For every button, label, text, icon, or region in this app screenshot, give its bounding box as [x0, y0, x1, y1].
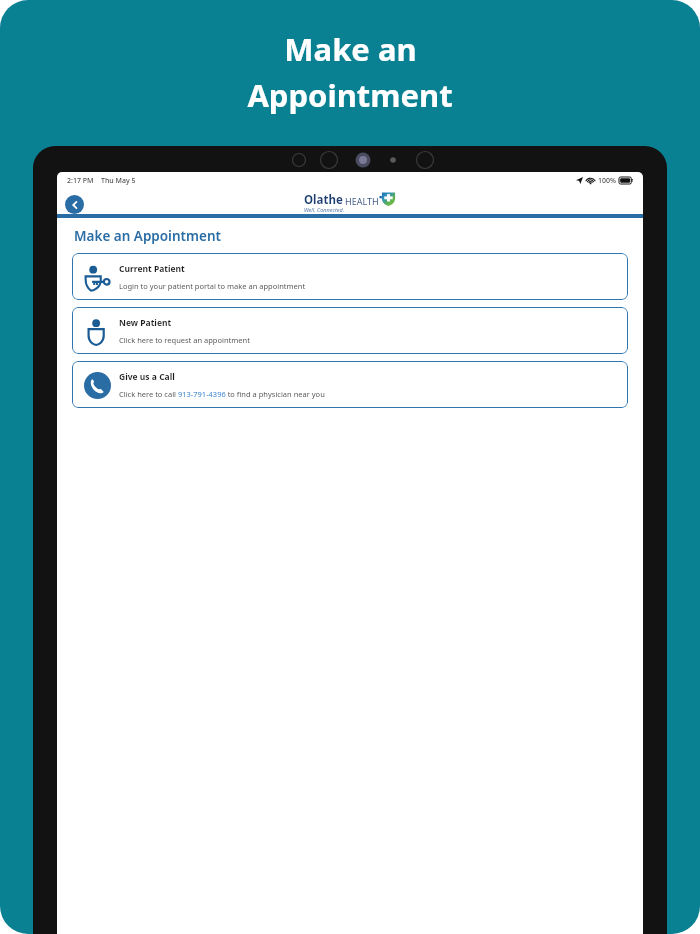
staticText: Thu May 5: [101, 176, 136, 186]
staticText: 100%: [598, 176, 616, 186]
button[interactable]: Current patient: [72, 253, 628, 300]
staticText: Current Patient: [119, 263, 185, 275]
staticText: Olathe: [304, 192, 343, 208]
staticText: Login to your patient portal to make an …: [119, 281, 306, 291]
button[interactable]: Give us a call: [72, 361, 628, 408]
other: Give us a call: [82, 370, 112, 400]
staticText: HEALTH: [345, 195, 379, 207]
staticText: Click here to request an appointment: [119, 335, 250, 345]
button[interactable]: Back: [65, 195, 84, 214]
staticText: Make an Appointment: [74, 227, 221, 245]
staticText: Well. Connected.: [304, 206, 345, 213]
staticText: New Patient: [119, 317, 172, 329]
staticText: Make an: [284, 28, 417, 70]
other: New patient: [82, 316, 112, 346]
staticText: Appointment: [247, 74, 453, 116]
staticText: Click here to call 913-791-4396 to find …: [119, 389, 325, 399]
staticText: Give us a Call: [119, 371, 175, 383]
button[interactable]: New patient: [72, 307, 628, 354]
other: Current patient: [82, 262, 112, 292]
staticText: 2:17 PM: [67, 176, 94, 186]
